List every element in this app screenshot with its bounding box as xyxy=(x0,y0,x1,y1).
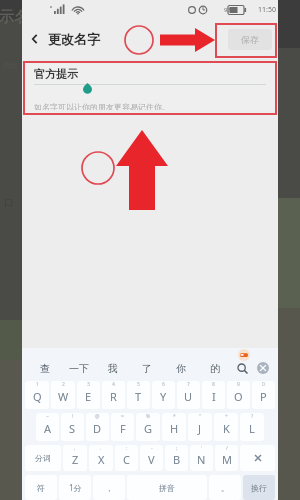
staticText: 9 xyxy=(237,381,240,388)
staticText: I xyxy=(212,389,216,404)
button[interactable]: 7 xyxy=(177,381,200,409)
staticText: 。 xyxy=(221,483,229,493)
staticText: % xyxy=(146,413,151,420)
staticText: ; xyxy=(176,445,178,452)
staticText: + xyxy=(225,413,228,420)
button[interactable]: ; xyxy=(165,445,188,471)
staticText: " xyxy=(199,413,202,420)
staticText: 查 xyxy=(40,362,50,375)
staticText: O xyxy=(234,389,243,404)
button[interactable]: 换行 xyxy=(243,475,275,500)
staticText: 口 xyxy=(4,196,14,209)
staticText: 我 xyxy=(108,362,118,375)
button[interactable]: " xyxy=(188,413,212,441)
button[interactable]: 1 xyxy=(25,381,49,409)
staticText: ! xyxy=(72,413,74,420)
button[interactable]: Backspace xyxy=(240,445,275,471)
button[interactable]: : xyxy=(115,445,138,471)
button[interactable]: 分词 xyxy=(25,445,61,471)
staticText: 更改名字 xyxy=(48,31,100,47)
staticText: 一下 xyxy=(69,362,89,375)
staticText: * xyxy=(173,413,176,420)
staticText: 5 xyxy=(137,381,140,388)
staticText: U xyxy=(184,389,193,404)
staticText: J xyxy=(198,421,202,436)
button[interactable]: ' xyxy=(190,445,213,471)
staticText: M xyxy=(222,452,232,467)
button[interactable]: Close keyboard xyxy=(252,358,274,378)
staticText: A xyxy=(44,421,52,436)
button[interactable]: 符 xyxy=(25,475,57,500)
staticText: ， xyxy=(105,483,113,493)
button[interactable]: ! xyxy=(61,413,84,441)
staticText: = xyxy=(121,413,124,420)
staticText: 示名 xyxy=(0,8,29,27)
button[interactable]: , xyxy=(63,445,87,471)
button[interactable]: Search xyxy=(232,358,252,378)
staticText: F xyxy=(120,421,126,436)
button[interactable]: - xyxy=(140,445,163,471)
staticText: N xyxy=(197,452,206,467)
staticText: 如名字可以让你的朋友更容易记住你。 xyxy=(34,102,170,110)
button[interactable]: 8 xyxy=(202,381,225,409)
staticText: 6 xyxy=(162,381,165,388)
staticText: R xyxy=(110,389,117,404)
staticText: 拼音 xyxy=(159,483,175,493)
button[interactable]: 5 xyxy=(127,381,150,409)
button[interactable]: = xyxy=(111,413,134,441)
staticText: - xyxy=(151,445,153,452)
button[interactable]: 4 xyxy=(102,381,125,409)
button[interactable]: Back xyxy=(22,20,48,58)
button[interactable]: 一下 xyxy=(62,358,96,378)
button[interactable]: ， xyxy=(93,475,125,500)
staticText: E xyxy=(85,389,92,404)
staticText: L xyxy=(249,421,255,436)
button[interactable]: 3 xyxy=(77,381,100,409)
button[interactable]: 了 xyxy=(130,358,164,378)
staticText: P xyxy=(260,389,267,404)
staticText: 8 xyxy=(212,381,215,388)
button[interactable]: 0 xyxy=(252,381,275,409)
staticText: 了 xyxy=(142,362,152,375)
button[interactable]: ? xyxy=(240,413,264,441)
button[interactable]: 官方提示 xyxy=(34,62,266,110)
button[interactable]: 。 xyxy=(209,475,241,500)
button[interactable]: 1分 xyxy=(59,475,91,500)
button[interactable]: % xyxy=(136,413,160,441)
button[interactable]: 保存 xyxy=(228,29,272,50)
staticText: 符 xyxy=(37,483,45,493)
staticText: 分词 xyxy=(35,453,51,463)
staticText: / xyxy=(226,445,228,452)
staticText: 2 xyxy=(62,381,65,388)
button[interactable]: 你 xyxy=(164,358,198,378)
button[interactable]: 9 xyxy=(227,381,250,409)
staticText: X xyxy=(98,452,105,467)
staticText: 官方提示 xyxy=(34,67,78,81)
staticText: : xyxy=(126,445,128,452)
staticText: B xyxy=(173,452,181,467)
button[interactable]: 6 xyxy=(152,381,175,409)
button[interactable]: ~ xyxy=(36,413,59,441)
staticText: Z xyxy=(72,452,79,467)
button[interactable]: + xyxy=(214,413,238,441)
button[interactable]: 拼音 xyxy=(127,475,207,500)
button[interactable]: 的 xyxy=(198,358,232,378)
staticText: , xyxy=(74,445,76,452)
button[interactable]: 查 xyxy=(28,358,62,378)
button[interactable]: / xyxy=(215,445,238,471)
staticText: 换行 xyxy=(251,483,267,493)
staticText: ? xyxy=(251,413,254,420)
staticText: 保存 xyxy=(241,34,259,45)
button[interactable]: * xyxy=(162,413,186,441)
staticText: Q xyxy=(33,389,42,404)
button[interactable]: @ xyxy=(86,413,109,441)
button[interactable]: . xyxy=(89,445,113,471)
staticText: 你 xyxy=(176,362,186,375)
staticText: 的 xyxy=(210,362,220,375)
staticText: ' xyxy=(201,445,203,452)
button[interactable]: 2 xyxy=(51,381,75,409)
staticText: D xyxy=(93,421,102,436)
staticText: G xyxy=(144,421,153,436)
button[interactable]: 我 xyxy=(96,358,130,378)
